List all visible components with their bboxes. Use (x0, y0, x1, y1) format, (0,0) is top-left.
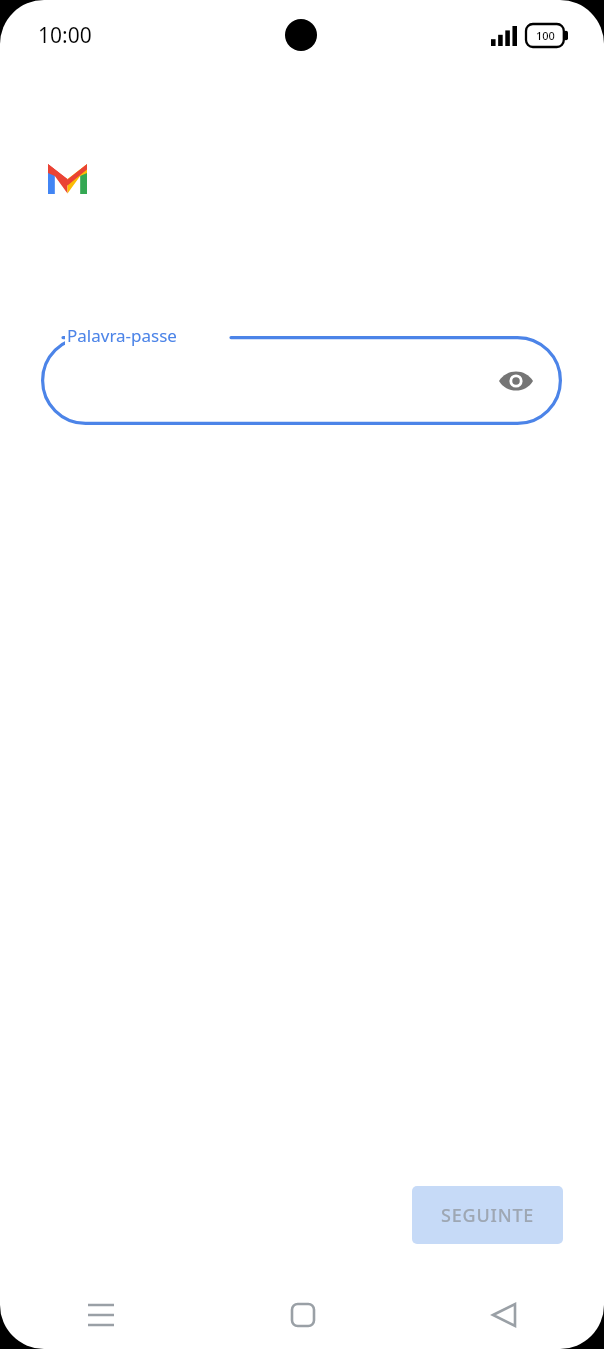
other: Gmail (48, 164, 87, 194)
button[interactable]: Show password (492, 357, 540, 405)
staticText: Palavra-passe (67, 324, 177, 347)
staticText: SEGUINTE (441, 1203, 535, 1228)
button[interactable]: SEGUINTE (412, 1186, 563, 1244)
button[interactable]: Home (202, 1280, 403, 1349)
staticText: 100 (536, 28, 555, 43)
button[interactable]: Recent apps (0, 1280, 202, 1349)
staticText: 10:00 (38, 21, 92, 50)
button[interactable]: Back (403, 1280, 604, 1349)
button[interactable]: Palavra-passe (41, 336, 562, 425)
